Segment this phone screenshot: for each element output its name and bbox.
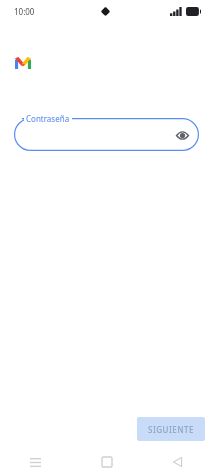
button[interactable]: Atrás: [142, 448, 213, 476]
staticText: 10:00: [14, 6, 35, 17]
button[interactable]: SIGUIENTE: [137, 417, 205, 441]
staticText: Contraseña: [26, 113, 70, 124]
staticText: SIGUIENTE: [148, 424, 194, 435]
button[interactable]: Mostrar contraseña: [175, 128, 189, 142]
button[interactable]: Inicio: [71, 448, 142, 476]
button[interactable]: Contraseña: [14, 118, 199, 151]
button[interactable]: Recientes: [0, 448, 71, 476]
